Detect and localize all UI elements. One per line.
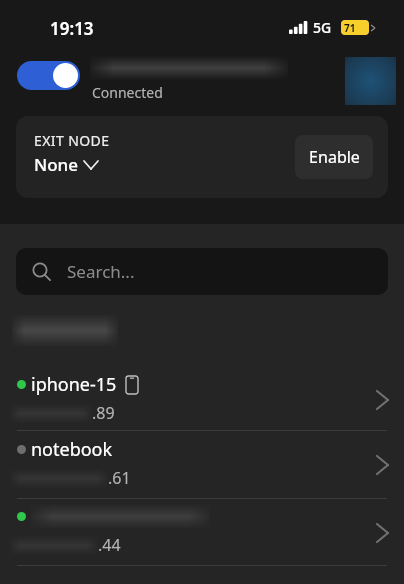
- staticText: 5G: [313, 18, 332, 37]
- staticText: None: [34, 153, 78, 176]
- staticText: 19:13: [50, 17, 94, 40]
- staticText: 71: [344, 21, 356, 35]
- button[interactable]: Enable: [295, 135, 373, 179]
- button[interactable]: .44: [0, 499, 404, 566]
- button[interactable]: VPN toggle, on: [17, 61, 80, 90]
- staticText: .44: [98, 534, 121, 556]
- staticText: iphone-15: [31, 372, 117, 397]
- staticText: EXIT NODE: [34, 131, 110, 150]
- button[interactable]: Account: [345, 57, 396, 105]
- staticText: Search...: [67, 260, 135, 283]
- staticText: .89: [92, 402, 115, 424]
- staticText: Connected: [92, 83, 163, 102]
- staticText: Enable: [309, 146, 360, 168]
- button[interactable]: iphone-15: [0, 369, 404, 431]
- staticText: .61: [108, 467, 131, 489]
- button[interactable]: notebook: [0, 431, 404, 499]
- button[interactable]: Search...: [16, 248, 388, 295]
- staticText: notebook: [31, 437, 113, 462]
